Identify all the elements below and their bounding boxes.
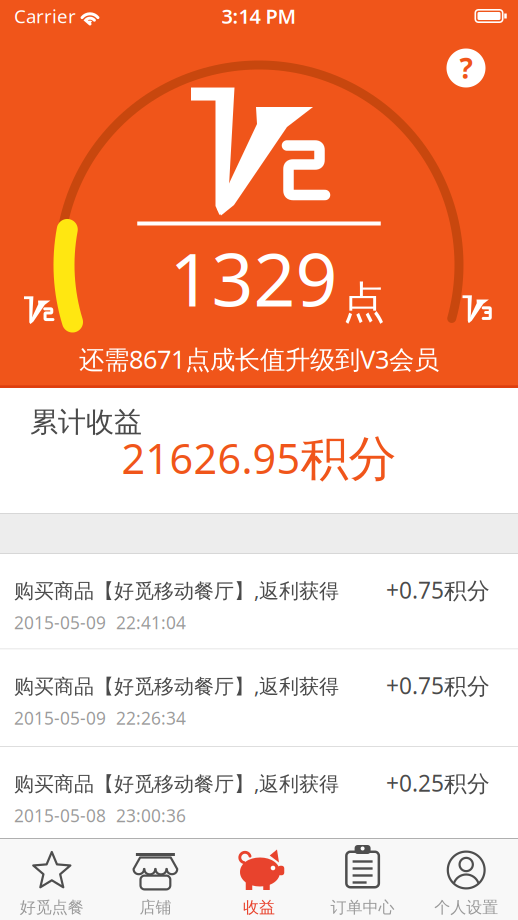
staticText: 3:14 PM [221,3,296,29]
staticText: 好觅点餐 [20,898,84,917]
button[interactable]: 购买商品【好觅移动餐厅】,返利获得 [0,554,518,648]
staticText: 购买商品【好觅移动餐厅】,返利获得 [14,672,339,699]
button[interactable]: 好觅点餐 [0,838,104,920]
button[interactable]: 收益 [207,838,311,920]
staticText: 2015-05-08 23:00:36 [14,804,186,827]
staticText: +0.75积分 [386,670,490,701]
staticText: 累计收益 [30,405,142,439]
button[interactable]: 订单中心 [311,838,414,920]
button[interactable]: 购买商品【好觅移动餐厅】,返利获得 [0,649,518,746]
staticText: 积分 [300,429,396,488]
staticText: 点 [342,276,385,329]
staticText: 1329 [169,229,337,327]
button[interactable]: Help [446,48,485,87]
button[interactable]: 个人设置 [414,838,518,920]
staticText: +0.25积分 [386,768,490,798]
staticText: 购买商品【好觅移动餐厅】,返利获得 [14,770,339,797]
staticText: 2015-05-09 22:26:34 [14,706,186,729]
staticText: 个人设置 [434,898,498,917]
staticText: Carrier [14,4,76,28]
staticText: 2015-05-09 22:41:04 [14,611,186,634]
staticText: 21626.95 [121,431,300,485]
button[interactable]: 店铺 [104,838,207,920]
staticText: +0.75积分 [386,575,490,605]
staticText: 还需8671点成长值升级到V3会员 [79,342,439,376]
button[interactable]: 购买商品【好觅移动餐厅】,返利获得 [0,747,518,843]
staticText: 订单中心 [331,898,395,917]
staticText: 收益 [243,898,275,917]
staticText: ? [459,49,472,87]
staticText: 店铺 [139,898,171,917]
staticText: 购买商品【好觅移动餐厅】,返利获得 [14,577,339,604]
